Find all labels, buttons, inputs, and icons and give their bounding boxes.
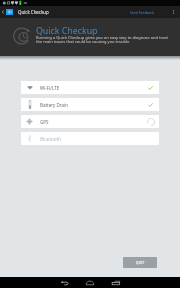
button[interactable]: Navigate up bbox=[0, 6, 6, 18]
staticText: Wi-Fi/LTE bbox=[40, 85, 60, 91]
button[interactable]: Battery Drain bbox=[21, 98, 159, 111]
staticText: Quick Checkup bbox=[18, 9, 49, 15]
button[interactable]: Home bbox=[80, 277, 100, 288]
button[interactable]: QUIT bbox=[123, 257, 157, 268]
button[interactable]: Wi-Fi/LTE bbox=[21, 81, 159, 94]
button[interactable]: Bluetooth bbox=[21, 132, 159, 145]
button[interactable]: Recent apps bbox=[106, 277, 126, 288]
staticText: Running a Quick Checkup gives you an eas… bbox=[36, 35, 169, 44]
staticText: GPS bbox=[40, 119, 49, 125]
staticText: Bluetooth bbox=[40, 136, 61, 142]
button[interactable]: More options bbox=[167, 6, 180, 18]
staticText: Send Feedback bbox=[130, 10, 154, 15]
button[interactable]: Back bbox=[54, 277, 74, 288]
button[interactable]: Send Feedback bbox=[129, 10, 155, 15]
button[interactable]: GPS bbox=[21, 115, 159, 128]
staticText: QUIT bbox=[136, 261, 145, 265]
staticText: Quick Checkup bbox=[36, 25, 98, 37]
staticText: Battery Drain bbox=[40, 102, 69, 108]
